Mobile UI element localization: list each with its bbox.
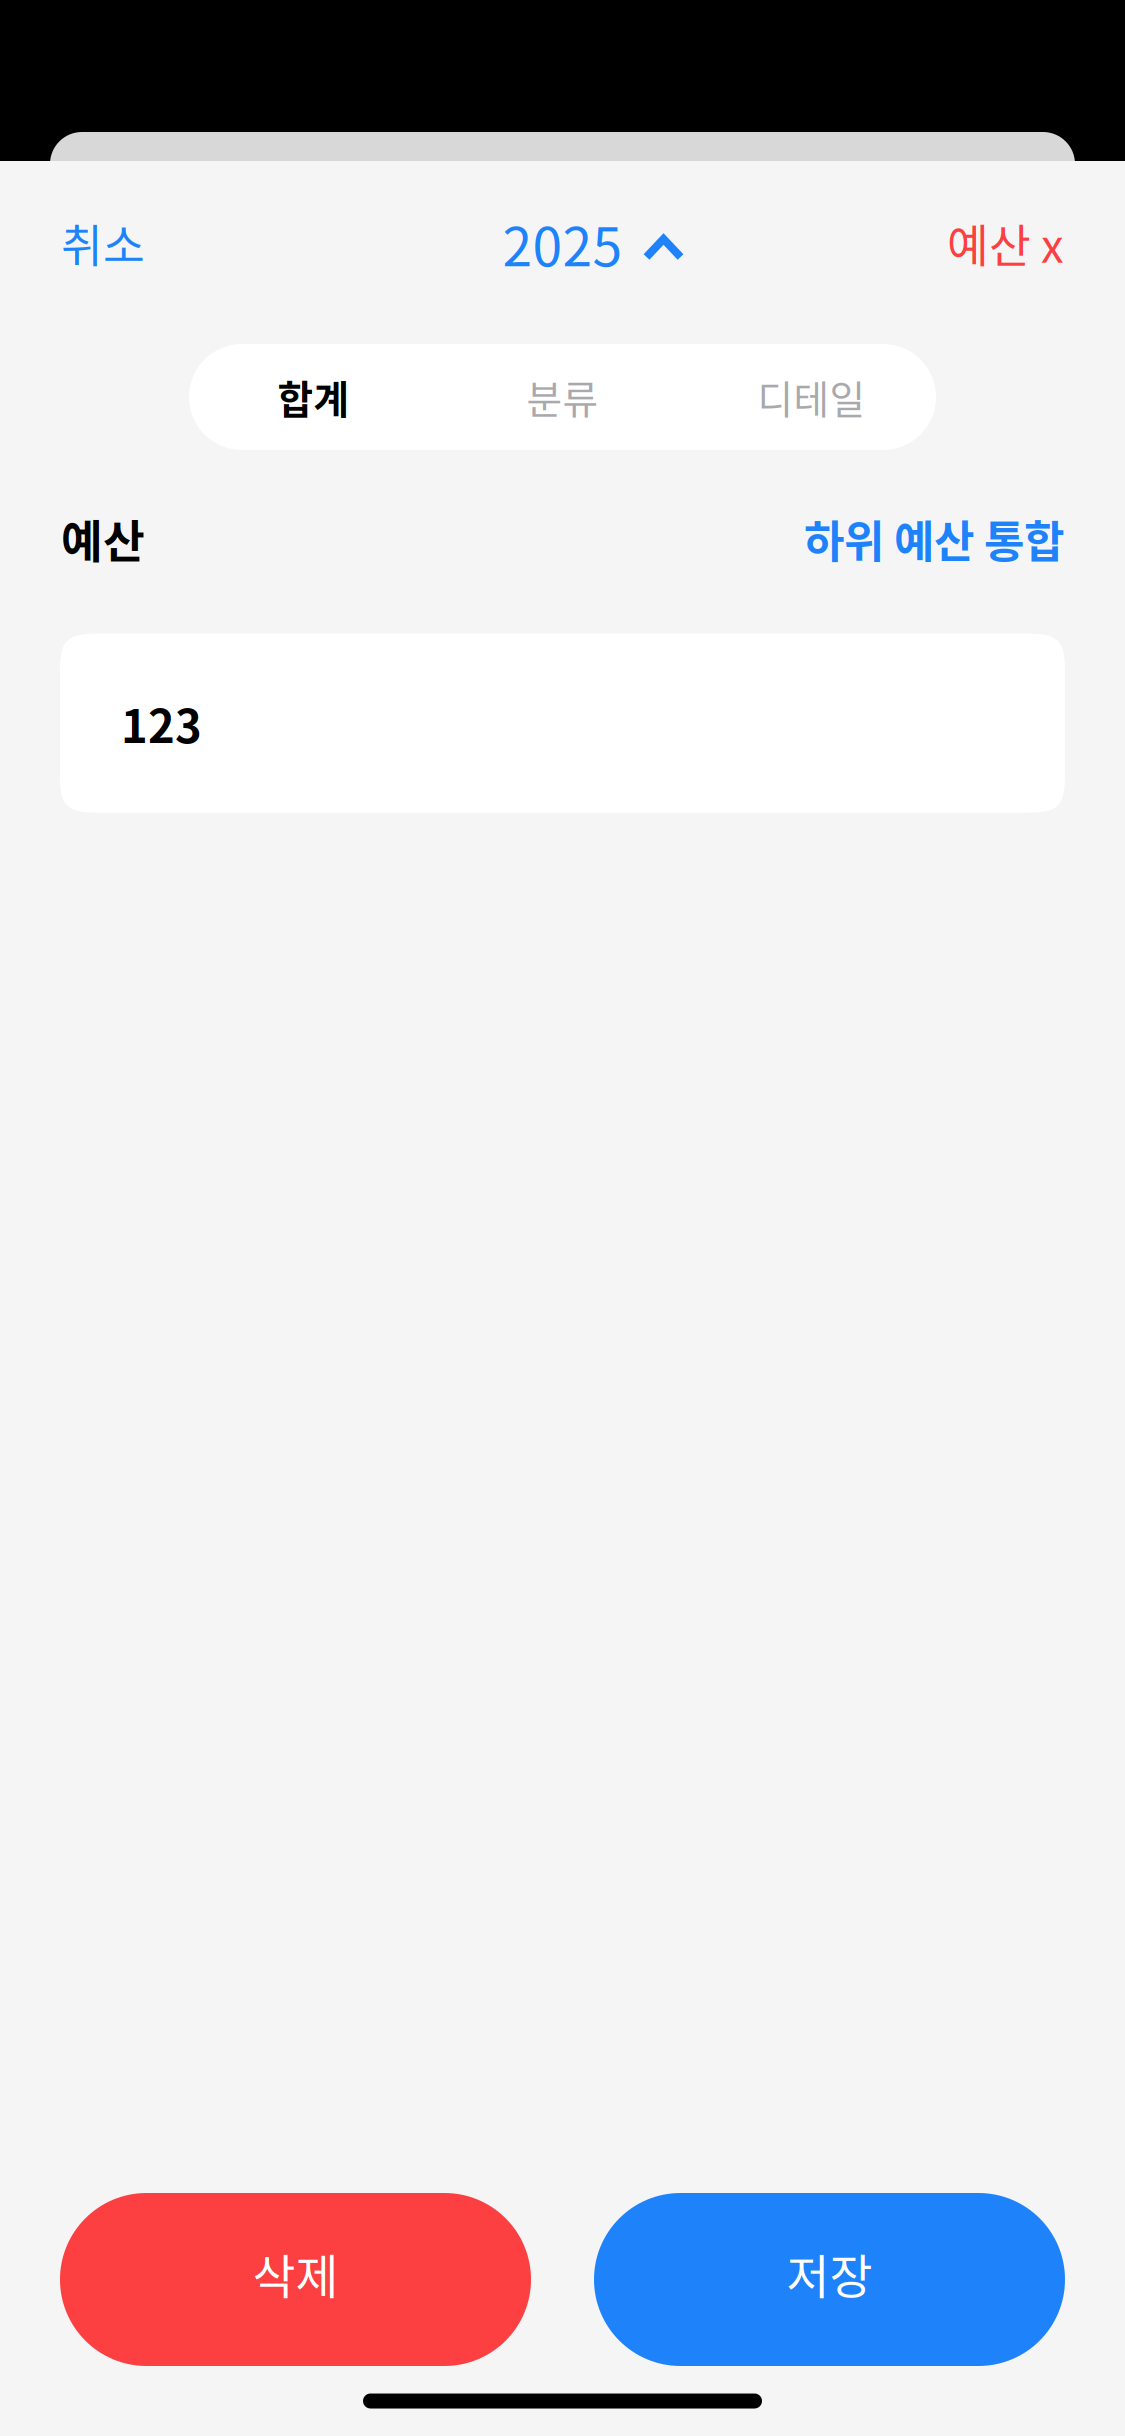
button[interactable]: 분류 [438,344,687,450]
button[interactable]: 저장 [594,2193,1065,2366]
button[interactable]: 디테일 [687,344,936,450]
staticText: 저장 [786,2240,872,2307]
staticText: 분류 [526,369,598,425]
staticText: 합계 [277,369,349,425]
staticText: 취소 [61,210,145,276]
staticText: 2025 [502,204,622,282]
button[interactable]: 삭제 [60,2193,531,2366]
staticText: 디테일 [757,369,865,425]
staticText: 예산 [61,506,145,572]
staticText: 123 [121,690,202,756]
button[interactable]: 취소 [61,210,145,276]
staticText: 하위 예산 통합 [804,507,1064,571]
staticText: 삭제 [252,2240,338,2307]
button[interactable]: 합계 [189,344,438,450]
button[interactable]: 하위 예산 통합 [804,507,1064,571]
button[interactable]: 예산 x [947,210,1064,276]
staticText: 예산 x [947,210,1064,276]
button[interactable]: 2025 [502,204,622,282]
